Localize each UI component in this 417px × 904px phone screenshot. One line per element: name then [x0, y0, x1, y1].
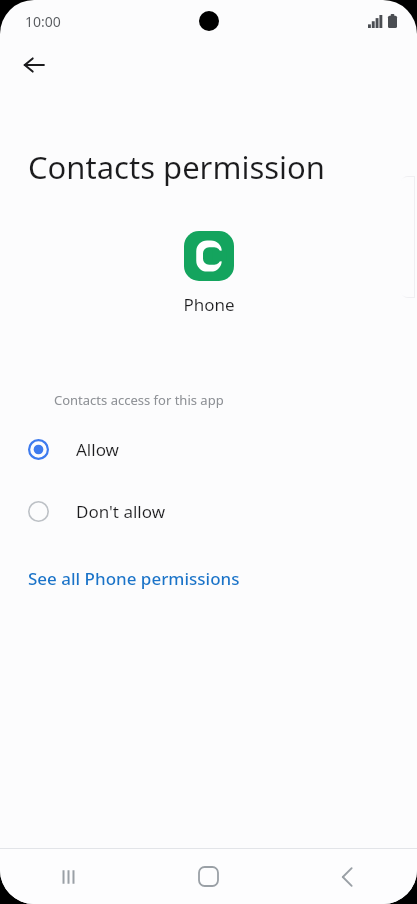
button[interactable]: Allow: [0, 428, 417, 470]
button[interactable]: Back: [12, 43, 56, 87]
staticText: 10:00: [25, 12, 61, 31]
staticText: Contacts access for this app: [54, 391, 397, 409]
staticText: Allow: [76, 438, 119, 461]
staticText: Contacts permission: [28, 146, 397, 188]
staticText: Don't allow: [76, 500, 166, 523]
button[interactable]: See all Phone permissions: [0, 563, 417, 594]
staticText: Phone: [183, 293, 235, 316]
button[interactable]: Home: [139, 849, 278, 904]
button[interactable]: Recent apps: [0, 849, 139, 904]
button[interactable]: Back: [278, 849, 417, 904]
button[interactable]: Don't allow: [0, 490, 417, 532]
staticText: See all Phone permissions: [28, 567, 240, 590]
